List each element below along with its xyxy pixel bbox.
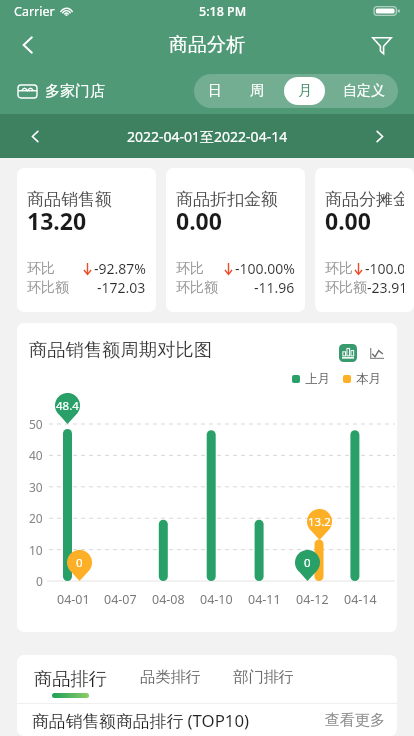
button[interactable]: 查看更多 — [325, 711, 385, 730]
staticText: 13.2 — [308, 514, 331, 530]
staticText: 查看更多 — [325, 711, 385, 730]
staticText: 品类排行 — [140, 667, 201, 686]
staticText: 13.20 — [27, 205, 87, 236]
staticText: 04-14 — [344, 591, 377, 608]
button[interactable]: 自定义 — [335, 77, 393, 105]
staticText: 商品销售额 — [27, 189, 112, 210]
staticText: 0 — [304, 555, 311, 571]
staticText: 04-08 — [152, 591, 185, 608]
staticText: 环比 — [176, 260, 204, 278]
button[interactable]: 月 — [284, 77, 325, 105]
staticText: 多家门店 — [45, 82, 105, 101]
button[interactable]: 商品销售额 — [17, 168, 156, 312]
staticText: 商品排行 — [34, 667, 107, 690]
staticText: 环比 — [27, 260, 55, 278]
staticText: 04-10 — [200, 591, 233, 608]
staticText: 上月 — [305, 371, 330, 387]
staticText: 日 — [208, 82, 222, 100]
button[interactable]: Back — [6, 23, 50, 67]
staticText: 10 — [29, 542, 43, 558]
staticText: -100.00% — [365, 259, 404, 278]
staticText: -23.91 — [367, 278, 404, 297]
staticText: 04-01 — [57, 591, 90, 608]
staticText: 48.4 — [56, 398, 79, 414]
button[interactable]: Previous period — [0, 114, 70, 158]
staticText: -100.00% — [235, 259, 295, 278]
staticText: 商品折扣金额 — [176, 189, 278, 210]
staticText: -172.03 — [97, 278, 146, 297]
staticText: 部门排行 — [233, 667, 294, 686]
staticText: 商品分摊金额 — [325, 189, 404, 210]
staticText: 商品销售额周期对比图 — [29, 338, 212, 361]
staticText: 周 — [250, 82, 264, 100]
staticText: 商品分析 — [169, 33, 245, 57]
staticText: 0.00 — [325, 205, 371, 236]
button[interactable]: 日 — [199, 77, 230, 105]
button[interactable]: 多家门店 — [17, 82, 105, 101]
staticText: 环比额 — [27, 279, 69, 297]
button[interactable]: 商品排行 — [34, 655, 107, 703]
staticText: 0.00 — [176, 205, 222, 236]
staticText: -92.87% — [94, 259, 146, 278]
button[interactable]: Next period — [344, 114, 414, 158]
staticText: 环比 — [325, 260, 353, 278]
staticText: Carrier — [14, 3, 55, 20]
staticText: 2022-04-01至2022-04-14 — [127, 127, 288, 146]
staticText: 月 — [298, 82, 312, 100]
staticText: 环比额 — [176, 279, 218, 297]
button[interactable]: 周 — [240, 77, 274, 105]
staticText: 自定义 — [343, 82, 385, 100]
button[interactable]: Filter — [362, 25, 402, 65]
button[interactable]: Line chart — [368, 344, 386, 362]
staticText: 商品销售额商品排行 (TOP10) — [32, 709, 250, 732]
staticText: -11.96 — [254, 278, 295, 297]
staticText: 04-07 — [104, 591, 137, 608]
staticText: 5:18 PM — [199, 3, 247, 20]
button[interactable]: Bar chart — [339, 344, 357, 362]
button[interactable]: 商品折扣金额 — [166, 168, 305, 312]
staticText: 0 — [76, 555, 83, 571]
button[interactable]: 品类排行 — [140, 655, 201, 700]
staticText: 本月 — [356, 371, 381, 387]
staticText: 30 — [29, 479, 43, 495]
staticText: 04-12 — [296, 591, 329, 608]
staticText: 20 — [29, 510, 43, 526]
staticText: 0 — [36, 573, 43, 589]
staticText: 40 — [29, 447, 43, 463]
staticText: 50 — [29, 416, 43, 432]
staticText: 环比额 — [325, 279, 367, 297]
button[interactable]: 部门排行 — [233, 655, 294, 700]
button[interactable]: 商品分摊金额 — [315, 168, 414, 312]
staticText: 04-11 — [248, 591, 281, 608]
